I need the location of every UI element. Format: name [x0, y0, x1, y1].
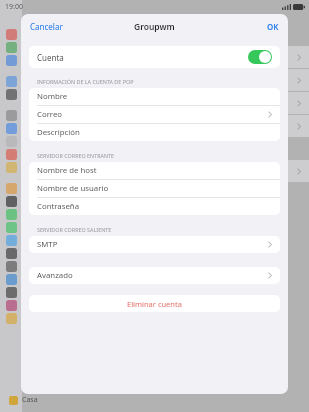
button[interactable]: Nombre: [29, 88, 280, 105]
staticText: SERVIDOR CORREO SALIENTE: [37, 226, 112, 233]
staticText: Avanzado: [37, 270, 73, 281]
button[interactable]: Nombre de host: [29, 162, 280, 179]
staticText: Ajustes: [46, 15, 69, 24]
button[interactable]: Nombre de usuario: [29, 180, 280, 197]
staticText: Nombre de host: [37, 165, 97, 176]
staticText: Cuenta: [37, 52, 64, 63]
staticText: OK: [267, 21, 279, 32]
staticText: Contraseña: [37, 201, 80, 212]
button[interactable]: Eliminar cuenta: [29, 295, 280, 312]
staticText: INFORMACIÓN DE LA CUENTA DE POP: [37, 78, 134, 85]
button[interactable]: Descripción: [29, 124, 280, 141]
staticText: Nombre: [37, 91, 68, 102]
staticText: SMTP: [37, 239, 58, 250]
button[interactable]: Contraseña: [29, 198, 280, 215]
button[interactable]: Avanzado: [29, 267, 280, 284]
staticText: Eliminar cuenta: [127, 299, 182, 309]
staticText: Descripción: [37, 127, 80, 138]
button[interactable]: OK: [258, 17, 288, 36]
staticText: 19:00: [5, 2, 23, 12]
staticText: Casa: [22, 395, 38, 405]
staticText: Cancelar: [30, 21, 63, 32]
staticText: Groupwm: [134, 21, 175, 33]
button[interactable]: Correo: [29, 106, 280, 123]
button[interactable]: Cuenta: [29, 46, 280, 68]
staticText: Nombre de usuario: [37, 183, 109, 194]
button[interactable]: Cuenta: [248, 50, 272, 64]
staticText: SERVIDOR CORREO ENTRANTE: [37, 152, 115, 159]
button[interactable]: SMTP: [29, 236, 280, 253]
button[interactable]: Cancelar: [21, 17, 72, 36]
staticText: Correo: [37, 109, 63, 120]
